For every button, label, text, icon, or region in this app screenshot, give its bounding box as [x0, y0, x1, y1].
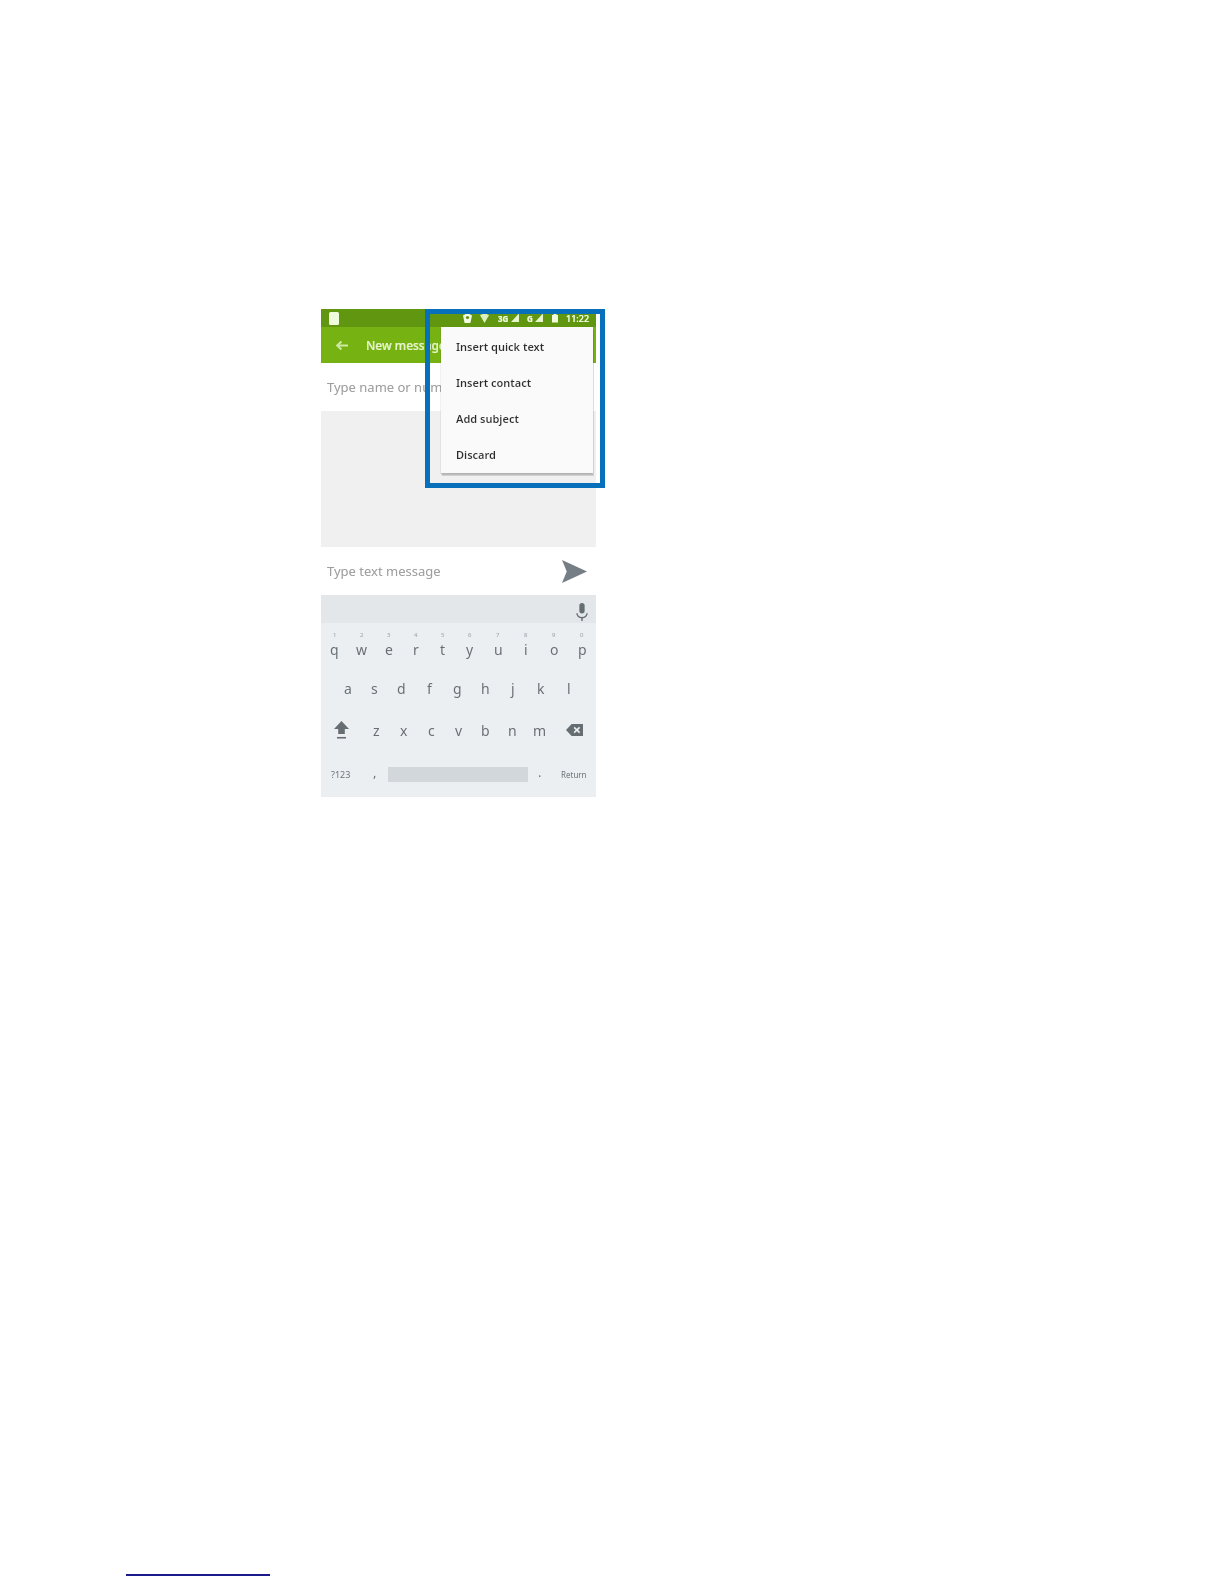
staticText: .: [538, 763, 542, 781]
staticText: y: [466, 640, 474, 659]
button[interactable]: n: [499, 709, 526, 751]
staticText: 4: [414, 631, 418, 639]
staticText: New message: [366, 337, 446, 353]
button[interactable]: z: [362, 709, 390, 751]
staticText: p: [578, 640, 587, 659]
staticText: a: [344, 679, 352, 698]
staticText: z: [373, 721, 380, 740]
staticText: 8: [524, 631, 528, 639]
button[interactable]: h: [471, 667, 499, 709]
button[interactable]: d: [388, 667, 415, 709]
button[interactable]: 0: [568, 623, 596, 667]
staticText: f: [427, 679, 432, 698]
staticText: x: [400, 721, 408, 740]
staticText: 3G: [498, 313, 509, 324]
staticText: Discard: [456, 447, 496, 462]
button[interactable]: Return: [552, 751, 596, 797]
button[interactable]: s: [361, 667, 388, 709]
staticText: 2: [360, 631, 364, 639]
button[interactable]: 8: [512, 623, 540, 667]
staticText: w: [356, 640, 368, 659]
staticText: g: [453, 679, 462, 698]
staticText: l: [567, 679, 571, 698]
staticText: s: [371, 679, 378, 698]
button[interactable]: 4: [402, 623, 429, 667]
button[interactable]: j: [499, 667, 527, 709]
button[interactable]: [388, 751, 528, 797]
staticText: t: [440, 640, 446, 659]
staticText: 11:22: [566, 312, 590, 324]
button[interactable]: 1: [321, 623, 348, 667]
button[interactable]: l: [555, 667, 583, 709]
staticText: Return: [561, 769, 587, 780]
button[interactable]: b: [472, 709, 499, 751]
staticText: m: [533, 721, 547, 740]
staticText: c: [428, 721, 435, 740]
staticText: 9: [552, 631, 556, 639]
staticText: ?123: [331, 768, 351, 780]
button[interactable]: 5: [429, 623, 456, 667]
staticText: Add subject: [456, 411, 519, 426]
button[interactable]: Voice input: [572, 602, 592, 622]
button[interactable]: a: [334, 667, 361, 709]
button[interactable]: .: [528, 751, 552, 797]
button[interactable]: f: [415, 667, 443, 709]
staticText: Type name or number: [327, 378, 464, 396]
button[interactable]: m: [526, 709, 553, 751]
button[interactable]: Send: [559, 556, 589, 586]
button[interactable]: 9: [540, 623, 568, 667]
button[interactable]: c: [418, 709, 445, 751]
staticText: i: [524, 640, 528, 659]
staticText: o: [550, 640, 559, 659]
staticText: ,: [373, 763, 377, 781]
staticText: G: [527, 313, 533, 324]
button[interactable]: 2: [348, 623, 375, 667]
staticText: k: [537, 679, 545, 698]
staticText: 1: [333, 631, 337, 639]
button[interactable]: k: [527, 667, 555, 709]
button[interactable]: ,: [361, 751, 388, 797]
staticText: j: [511, 679, 515, 698]
button[interactable]: Backspace: [553, 709, 596, 751]
staticText: v: [455, 721, 463, 740]
staticText: Insert quick text: [456, 339, 545, 354]
staticText: 3: [387, 631, 391, 639]
button[interactable]: Shift: [321, 709, 362, 751]
staticText: u: [494, 640, 503, 659]
button[interactable]: 7: [484, 623, 512, 667]
button[interactable]: Add subject: [441, 400, 593, 436]
staticText: h: [481, 679, 490, 698]
staticText: r: [413, 640, 419, 659]
button[interactable]: 3: [375, 623, 402, 667]
staticText: b: [481, 721, 490, 740]
button[interactable]: v: [445, 709, 472, 751]
staticText: q: [330, 640, 339, 659]
button[interactable]: Type name or number: [321, 363, 596, 411]
staticText: 5: [441, 631, 445, 639]
staticText: Type text message: [327, 562, 441, 580]
staticText: 7: [496, 631, 500, 639]
button[interactable]: Discard: [441, 436, 593, 472]
button[interactable]: ?123: [321, 751, 361, 797]
staticText: d: [397, 679, 406, 698]
button[interactable]: 6: [456, 623, 484, 667]
button[interactable]: Insert contact: [441, 364, 593, 400]
button[interactable]: g: [443, 667, 471, 709]
staticText: n: [508, 721, 517, 740]
staticText: 0: [580, 631, 584, 639]
staticText: Insert contact: [456, 375, 532, 390]
staticText: e: [385, 640, 393, 659]
button[interactable]: x: [390, 709, 418, 751]
button[interactable]: Insert quick text: [441, 328, 593, 364]
staticText: 6: [468, 631, 472, 639]
button[interactable]: Back: [331, 334, 353, 356]
